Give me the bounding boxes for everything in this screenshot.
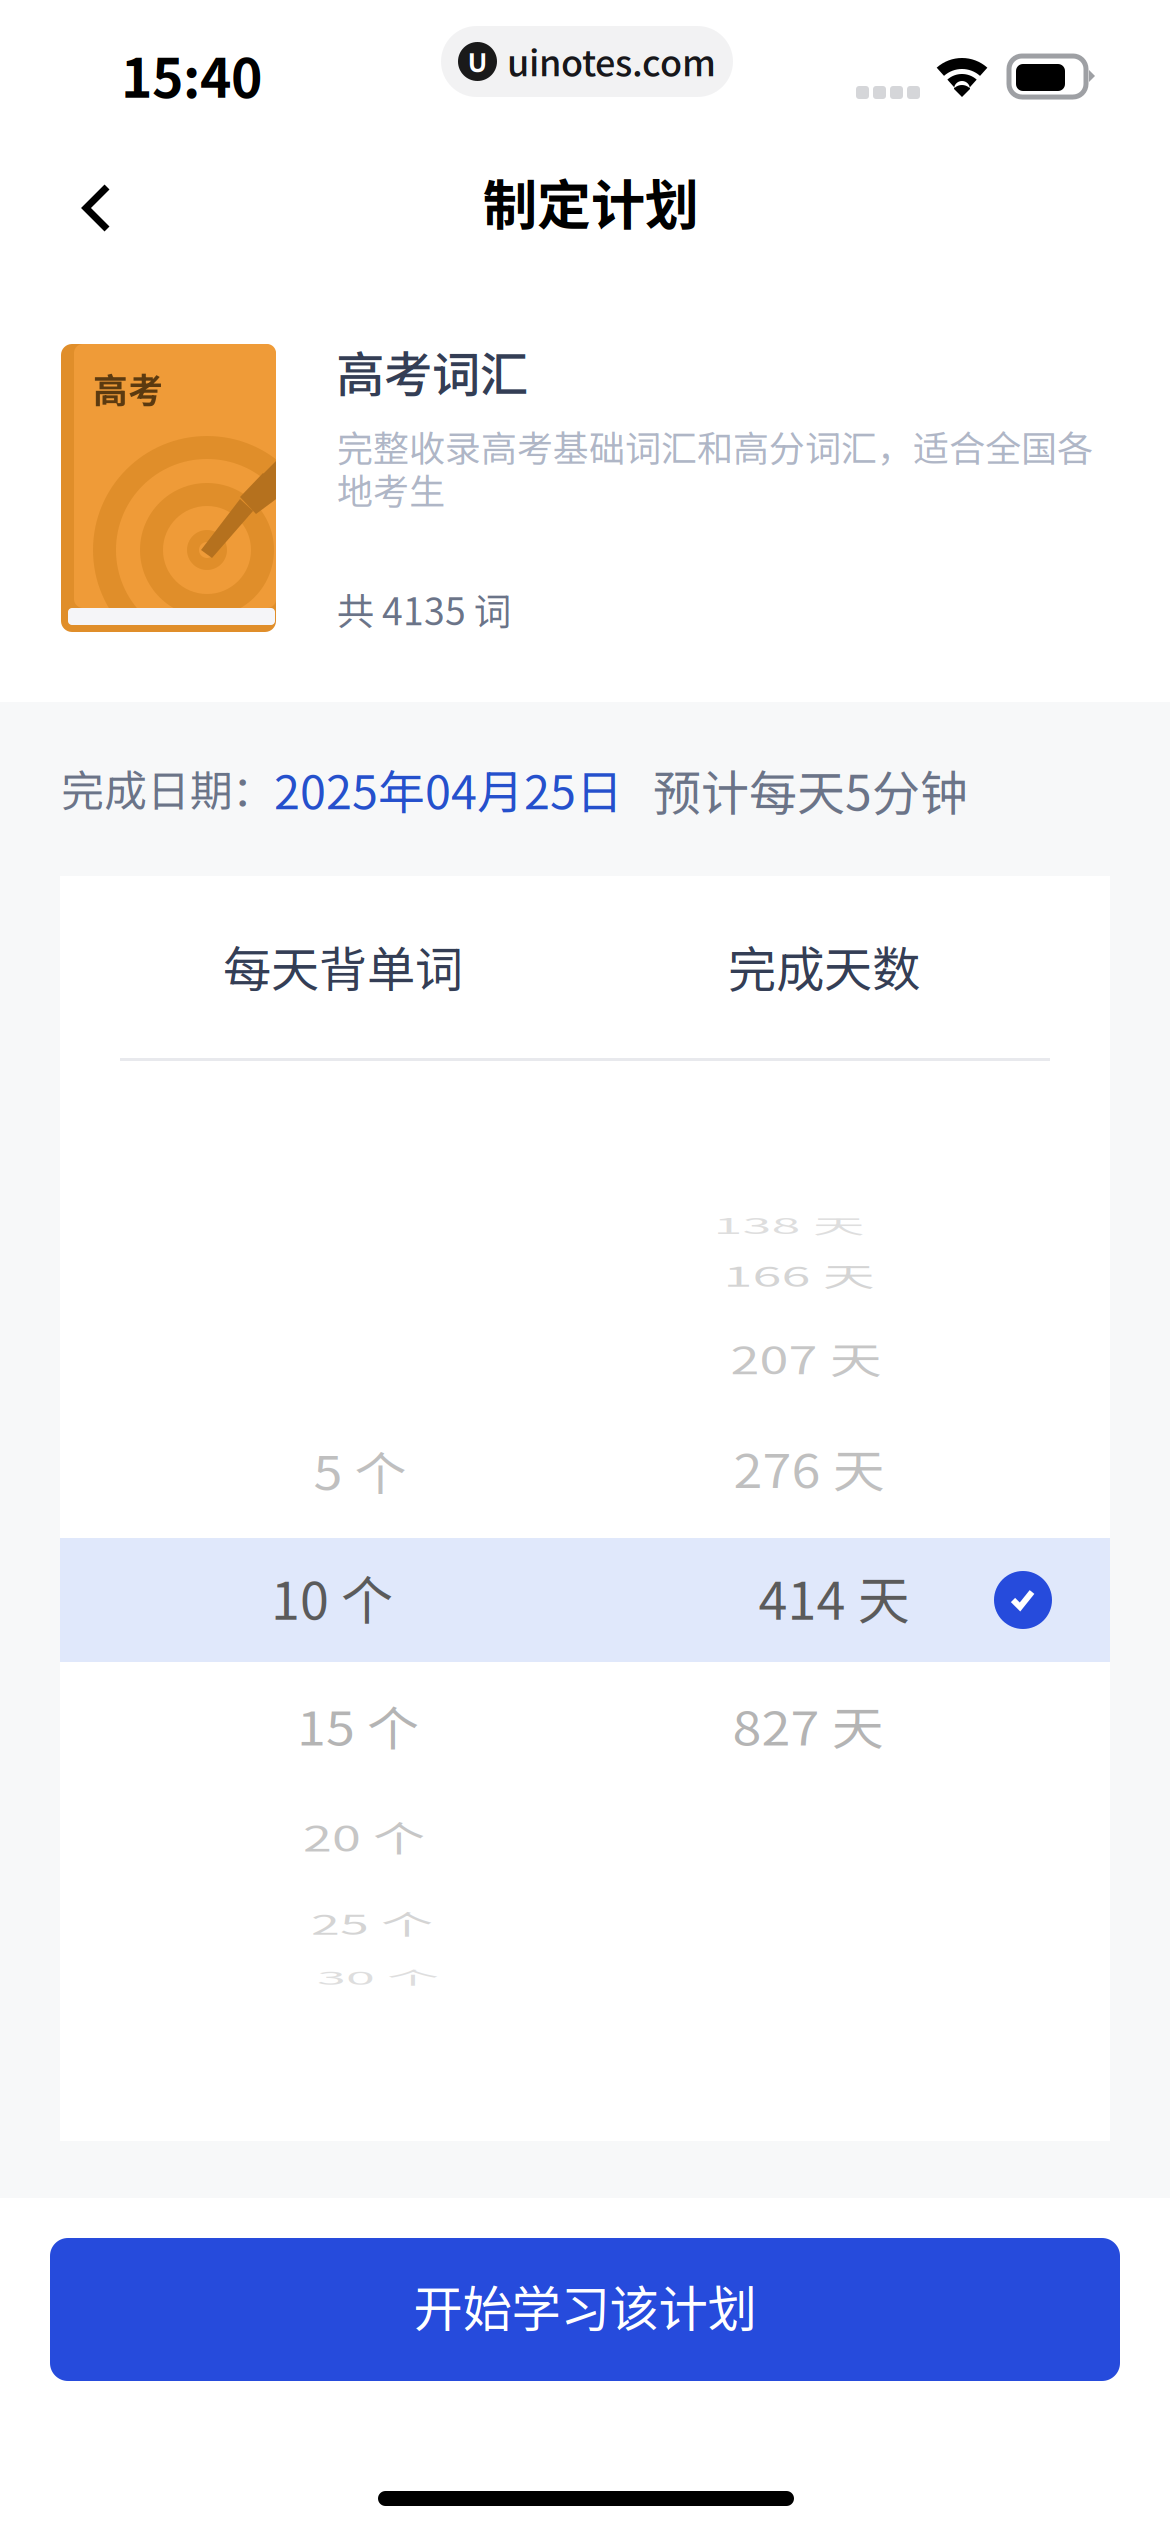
staticText: 高考词汇 (336, 336, 528, 406)
staticText: 5 个 (313, 1432, 406, 1508)
button[interactable]: 166 天 (569, 1227, 1029, 1323)
button[interactable]: 15 个 (128, 1677, 588, 1773)
button[interactable]: 高考 (0, 300, 1170, 702)
staticText: 制定计划 (483, 162, 699, 240)
button[interactable]: 25 个 (142, 1875, 602, 1971)
button[interactable]: 138 天 (559, 1177, 1019, 1273)
staticText: 276 天 (733, 1430, 884, 1506)
button[interactable]: Back (34, 157, 151, 259)
staticText: 完成天数 (728, 931, 920, 1001)
staticText: 20 个 (303, 1798, 425, 1874)
staticText: 每天背单词 (223, 931, 463, 1001)
button[interactable]: 30 个 (148, 1929, 608, 2025)
staticText: 高考 (93, 363, 163, 413)
button[interactable]: Selected plan (994, 1571, 1052, 1629)
staticText: 2025年04月25日 (274, 755, 623, 823)
staticText: 10 个 (271, 1559, 393, 1635)
button[interactable]: 276 天 (579, 1420, 1039, 1516)
button[interactable]: 10 个 (102, 1549, 562, 1645)
button[interactable]: 414 天 (604, 1549, 1064, 1645)
staticText: 827 天 (732, 1687, 883, 1763)
staticText: 30 个 (317, 1939, 439, 2015)
staticText: 地考生 (337, 463, 445, 515)
staticText: 预计每天5分钟 (653, 755, 968, 824)
staticText: 25 个 (311, 1885, 433, 1961)
staticText: U (467, 41, 487, 80)
staticText: 166 天 (723, 1237, 874, 1313)
staticText: 414 天 (758, 1559, 909, 1635)
staticText: ： (232, 757, 275, 819)
staticText: 开始学习该计划 (413, 2270, 756, 2341)
staticText: 共 4135 词 (337, 582, 511, 636)
button[interactable]: 5 个 (130, 1422, 590, 1518)
button[interactable]: 20 个 (134, 1788, 594, 1884)
staticText: 207 天 (730, 1320, 881, 1396)
staticText: 15:40 (121, 36, 262, 113)
staticText: 完整收录高考基础词汇和高分词汇，适合全国各 (337, 420, 1093, 472)
staticText: 完成日期 (61, 757, 233, 819)
staticText: 138 天 (713, 1187, 864, 1263)
button[interactable]: 开始学习该计划 (50, 2238, 1120, 2381)
button[interactable]: 207 天 (576, 1310, 1036, 1406)
staticText: uinotes.com (507, 34, 716, 86)
button[interactable]: 827 天 (578, 1677, 1038, 1773)
staticText: 15 个 (297, 1687, 419, 1763)
